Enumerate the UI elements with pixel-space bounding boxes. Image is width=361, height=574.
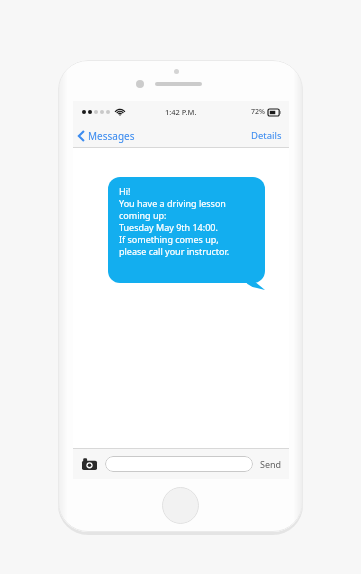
staticText: Tuesday May 9th 14:00. (119, 221, 218, 233)
staticText: please call your instructor. (119, 245, 230, 257)
staticText: You have a driving lesson (119, 197, 226, 209)
button[interactable]: Camera (80, 455, 98, 473)
button[interactable]: Hi! (108, 177, 265, 290)
staticText: Messages (88, 129, 135, 143)
button[interactable]: Home (162, 487, 199, 524)
staticText: 72% (251, 107, 265, 117)
staticText: Send (260, 458, 282, 470)
staticText: Hi! (119, 185, 131, 197)
staticText: 1:42 P.M. (165, 107, 197, 117)
staticText: If something comes up, (119, 233, 219, 245)
staticText: coming up: (119, 209, 167, 221)
button[interactable]: Send (260, 458, 282, 470)
button[interactable] (105, 456, 253, 472)
button[interactable]: Messages (78, 129, 135, 143)
staticText: Details (251, 129, 282, 142)
button[interactable]: Messages (73, 123, 289, 148)
button[interactable]: Details (251, 129, 289, 142)
